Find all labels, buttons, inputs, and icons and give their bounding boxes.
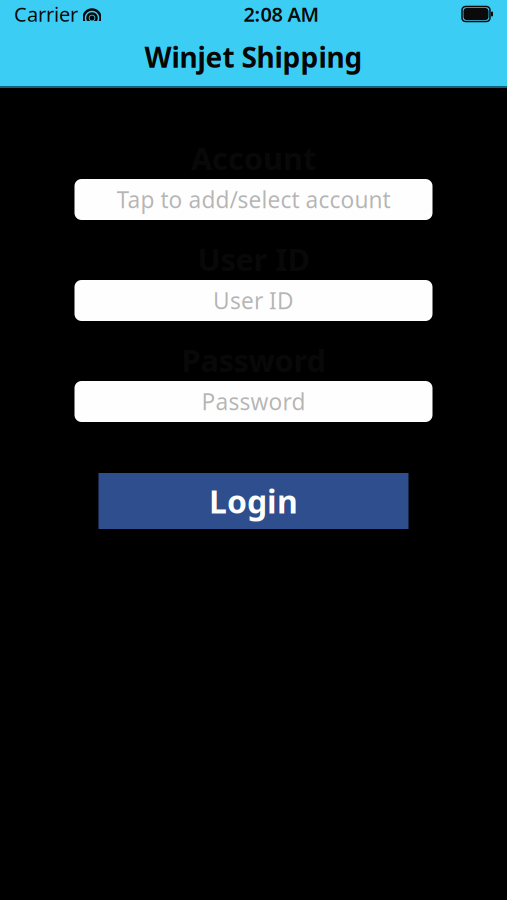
- staticText: Login: [209, 480, 298, 522]
- staticText: 2:08 AM: [243, 1, 319, 27]
- staticText: Carrier: [14, 1, 78, 27]
- staticText: Password: [181, 340, 325, 380]
- button[interactable]: User ID: [74, 280, 432, 321]
- staticText: Winjet Shipping: [144, 38, 362, 76]
- button[interactable]: Tap to add/select account: [74, 179, 432, 220]
- staticText: Account: [191, 138, 316, 178]
- staticText: Tap to add/select account: [116, 184, 390, 214]
- staticText: User ID: [197, 239, 309, 279]
- button[interactable]: Login: [98, 473, 408, 529]
- staticText: Password: [201, 386, 305, 416]
- button[interactable]: Password: [74, 381, 432, 422]
- staticText: User ID: [213, 285, 294, 315]
